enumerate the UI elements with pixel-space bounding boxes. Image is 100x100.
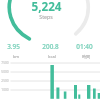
staticText: Steps	[39, 13, 53, 20]
staticText: 5,224	[31, 0, 62, 14]
staticText: kcal	[48, 54, 56, 59]
staticText: 1000	[1, 88, 9, 92]
staticText: 200.8	[42, 42, 59, 51]
staticText: 2500	[1, 79, 9, 83]
staticText: 5000	[1, 70, 9, 74]
staticText: 3.95	[7, 42, 20, 51]
staticText: 7500	[1, 61, 9, 65]
staticText: 01:40	[76, 42, 93, 51]
staticText: 時間	[82, 54, 90, 59]
staticText: km	[13, 54, 19, 59]
